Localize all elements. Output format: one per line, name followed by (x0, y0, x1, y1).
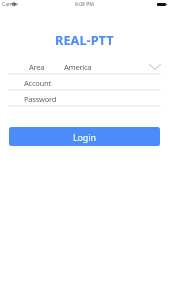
staticText: Account (24, 78, 51, 88)
other: Select area (149, 64, 161, 70)
staticText: Carrier (2, 1, 19, 8)
button[interactable]: Account (0, 75, 169, 91)
staticText: America (64, 62, 92, 72)
button[interactable]: Password (0, 91, 169, 107)
staticText: 6:08 PM (75, 1, 94, 8)
staticText: Area (29, 62, 45, 72)
staticText: Password (24, 94, 57, 104)
button[interactable]: Area (0, 58, 169, 75)
button[interactable]: Login (9, 127, 160, 146)
staticText: REAL-PTT (55, 31, 114, 48)
other: Wi-Fi (12, 3, 16, 6)
staticText: Login (73, 131, 96, 143)
